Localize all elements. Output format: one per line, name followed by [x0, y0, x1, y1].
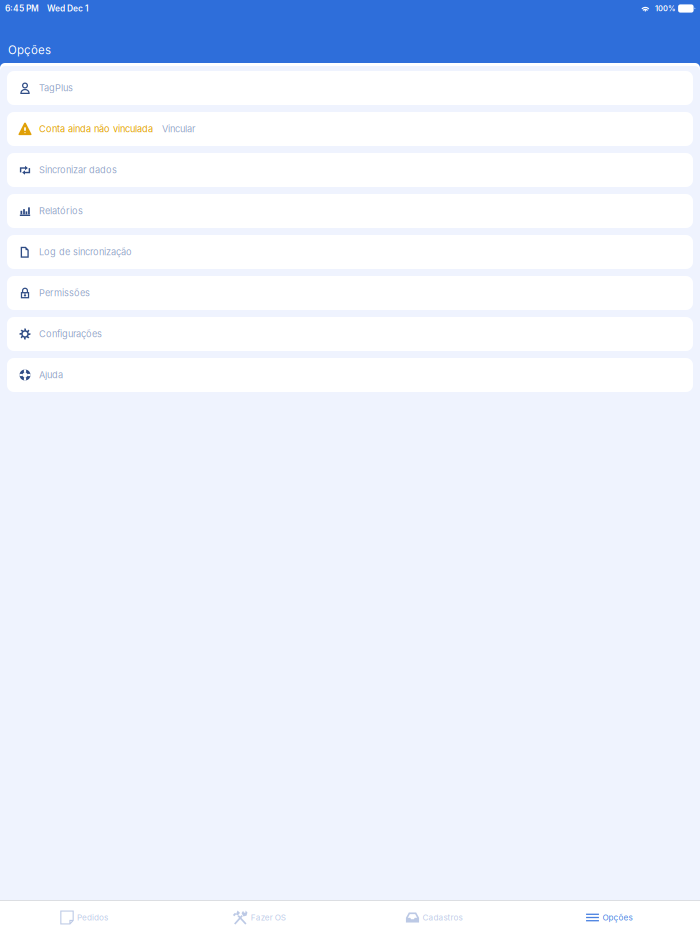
- button[interactable]: Fazer OS: [175, 901, 350, 934]
- staticText: Conta ainda não vinculada: [39, 123, 153, 134]
- button[interactable]: Opções: [525, 901, 700, 934]
- button[interactable]: Relatórios: [7, 194, 693, 228]
- staticText: Permissões: [39, 287, 90, 298]
- staticText: Ajuda: [39, 369, 63, 380]
- button[interactable]: Conta ainda não vinculada: [7, 112, 693, 146]
- staticText: TagPlus: [39, 82, 73, 93]
- button[interactable]: Sincronizar dados: [7, 153, 693, 187]
- staticText: Pedidos: [77, 913, 108, 922]
- staticText: Log de sincronização: [39, 246, 132, 257]
- staticText: Vincular: [162, 123, 195, 134]
- button[interactable]: Pedidos: [0, 901, 175, 934]
- staticText: Configurações: [39, 328, 102, 339]
- staticText: 6:45 PM: [5, 3, 39, 14]
- staticText: Fazer OS: [251, 913, 286, 922]
- button[interactable]: Permissões: [7, 276, 693, 310]
- staticText: Opções: [602, 913, 632, 922]
- staticText: Relatórios: [39, 205, 83, 216]
- staticText: Sincronizar dados: [39, 164, 117, 175]
- button[interactable]: Ajuda: [7, 358, 693, 392]
- staticText: Cadastros: [422, 913, 462, 922]
- staticText: 100%: [655, 4, 675, 13]
- staticText: Wed Dec 1: [47, 3, 89, 14]
- button[interactable]: TagPlus: [7, 71, 693, 105]
- button[interactable]: Configurações: [7, 317, 693, 351]
- button[interactable]: Log de sincronização: [7, 235, 693, 269]
- button[interactable]: Cadastros: [350, 901, 525, 934]
- staticText: Opções: [8, 43, 51, 57]
